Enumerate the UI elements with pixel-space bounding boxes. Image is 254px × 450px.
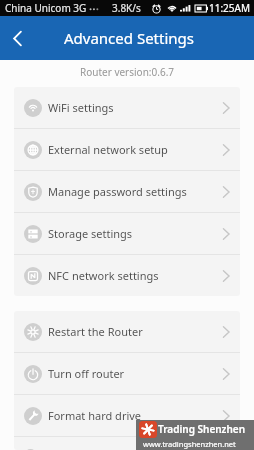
staticText: Advanced Settings: [64, 28, 194, 48]
staticText: 11:25AM: [209, 1, 251, 15]
button[interactable]: WiFi settings: [14, 87, 240, 128]
button[interactable]: Format hard drive: [14, 395, 240, 436]
staticText: Router version:0.6.7: [0, 65, 254, 79]
button[interactable]: Storage settings: [14, 213, 240, 254]
staticText: Format hard drive: [48, 408, 142, 423]
button[interactable]: Turn off router: [14, 353, 240, 394]
button[interactable]: [14, 437, 240, 450]
button[interactable]: External network setup: [14, 129, 240, 170]
staticText: Manage password settings: [48, 184, 187, 199]
button[interactable]: Manage password settings: [14, 171, 240, 212]
staticText: NFC network settings: [48, 268, 159, 283]
staticText: WiFi settings: [48, 100, 114, 115]
staticText: www.tradingshenzhen.net: [143, 439, 236, 449]
button[interactable]: NFC network settings: [14, 255, 240, 296]
staticText: China Unicom 3G: [5, 1, 87, 15]
staticText: External network setup: [48, 142, 168, 157]
staticText: Turn off router: [48, 366, 125, 381]
staticText: Storage settings: [48, 226, 133, 241]
staticText: 3.8K/s: [112, 1, 141, 15]
staticText: Trading Shenzhen: [158, 422, 246, 436]
button[interactable]: Restart the Router: [14, 311, 240, 352]
staticText: Restart the Router: [48, 324, 143, 339]
button[interactable]: Back: [0, 16, 34, 60]
